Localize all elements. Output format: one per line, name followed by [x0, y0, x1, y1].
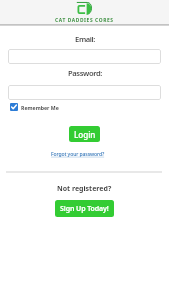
button[interactable]: Cat Daddies Cores home: [76, 1, 92, 15]
staticText: Login: [74, 129, 96, 140]
staticText: Sign Up Today!: [60, 204, 109, 214]
button[interactable]: Text field: [8, 85, 161, 100]
button[interactable]: Text field: [8, 49, 161, 64]
staticText: Remember Me: [21, 104, 59, 111]
button[interactable]: Remember Me: [9, 102, 59, 112]
button[interactable]: Forgot your password?: [51, 151, 105, 158]
staticText: Email:: [75, 34, 95, 44]
staticText: Not registered?: [57, 184, 112, 194]
button[interactable]: Sign Up Today!: [55, 200, 114, 217]
staticText: Password:: [68, 68, 102, 78]
staticText: Forgot your password?: [51, 151, 105, 158]
staticText: CAT DADDIES CORES: [55, 17, 114, 24]
button[interactable]: Login: [69, 126, 100, 142]
